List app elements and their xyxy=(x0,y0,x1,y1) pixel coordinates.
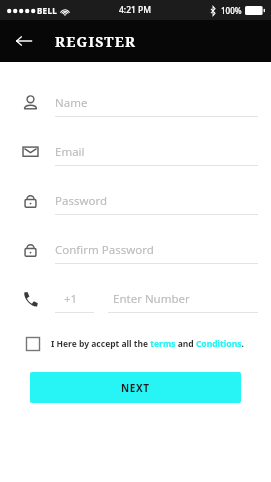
button[interactable]: Email xyxy=(0,127,271,176)
button[interactable]: Back xyxy=(10,27,38,55)
staticText: Enter Number xyxy=(113,291,190,307)
staticText: Name xyxy=(55,95,88,111)
staticText: 100% xyxy=(221,5,242,16)
button[interactable]: I Here by accept all the terms and Condi… xyxy=(26,331,259,357)
button[interactable]: +1 xyxy=(0,274,271,323)
button[interactable]: Name xyxy=(0,78,271,127)
button[interactable]: Password xyxy=(0,176,271,225)
button[interactable]: NEXT xyxy=(30,372,241,403)
staticText: Password xyxy=(55,193,108,209)
staticText: Email xyxy=(55,144,85,160)
staticText: +1 xyxy=(64,291,78,307)
staticText: NEXT xyxy=(121,381,150,395)
staticText: BELL xyxy=(37,5,57,16)
button[interactable]: Confirm Password xyxy=(0,225,271,274)
staticText: REGISTER xyxy=(55,32,137,51)
staticText: 4:21 PM xyxy=(119,4,152,16)
staticText: Confirm Password xyxy=(55,242,154,258)
staticText: I Here by accept all the terms and Condi… xyxy=(51,338,244,350)
